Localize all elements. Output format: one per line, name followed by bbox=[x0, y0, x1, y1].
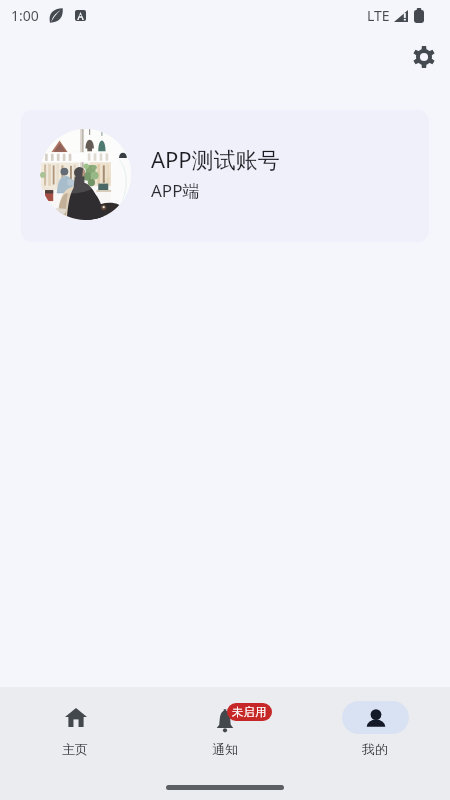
button[interactable]: APP测试账号 bbox=[21, 110, 429, 242]
staticText: LTE bbox=[367, 6, 390, 25]
staticText: 1:00 bbox=[11, 6, 39, 25]
staticText: 我的 bbox=[362, 741, 388, 757]
button[interactable]: Settings bbox=[404, 37, 444, 77]
button[interactable]: 未启用 bbox=[150, 687, 300, 767]
staticText: APP端 bbox=[151, 179, 200, 202]
staticText: 主页 bbox=[62, 741, 88, 757]
button[interactable]: 我的 bbox=[300, 687, 450, 767]
staticText: APP测试账号 bbox=[151, 144, 280, 174]
staticText: 通知 bbox=[212, 741, 238, 757]
button[interactable]: 主页 bbox=[0, 687, 150, 767]
staticText: 未启用 bbox=[232, 705, 267, 719]
